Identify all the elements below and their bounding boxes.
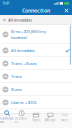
staticText: SMS ticket [44,118,56,122]
button[interactable]: Connection [0,113,14,128]
button[interactable]: Tickets [29,113,43,128]
button[interactable]: Close [61,6,72,15]
staticText: Trains [11,74,22,79]
button[interactable]: Trains [0,70,72,83]
staticText: Departures [15,117,28,124]
button[interactable]: More [58,113,72,128]
button[interactable]: Brno + IDS JMK (my [0,25,72,44]
staticText: 9:41 [2,0,9,6]
staticText: locations) [11,35,27,40]
button[interactable]: Liberec + IDOL [0,96,72,109]
staticText: Connection [0,117,14,124]
staticText: All timetables [8,17,32,23]
staticText: Tickets [32,118,40,122]
staticText: Buses [11,87,22,92]
staticText: Trains + Buses [11,61,37,66]
button[interactable]: All timetables [0,44,72,57]
button[interactable]: SMS ticket [43,113,58,128]
staticText: Brno + IDS JMK (my [11,29,46,34]
button[interactable]: Buses [0,83,72,96]
staticText: More [61,118,68,122]
button[interactable]: Trains + Buses [0,57,72,70]
button[interactable]: Departures [14,113,29,128]
button[interactable]: All timetables [0,15,72,25]
staticText: Liberec + IDOL [11,100,37,105]
staticText: Connection [22,7,50,14]
staticText: All timetables [11,48,35,53]
